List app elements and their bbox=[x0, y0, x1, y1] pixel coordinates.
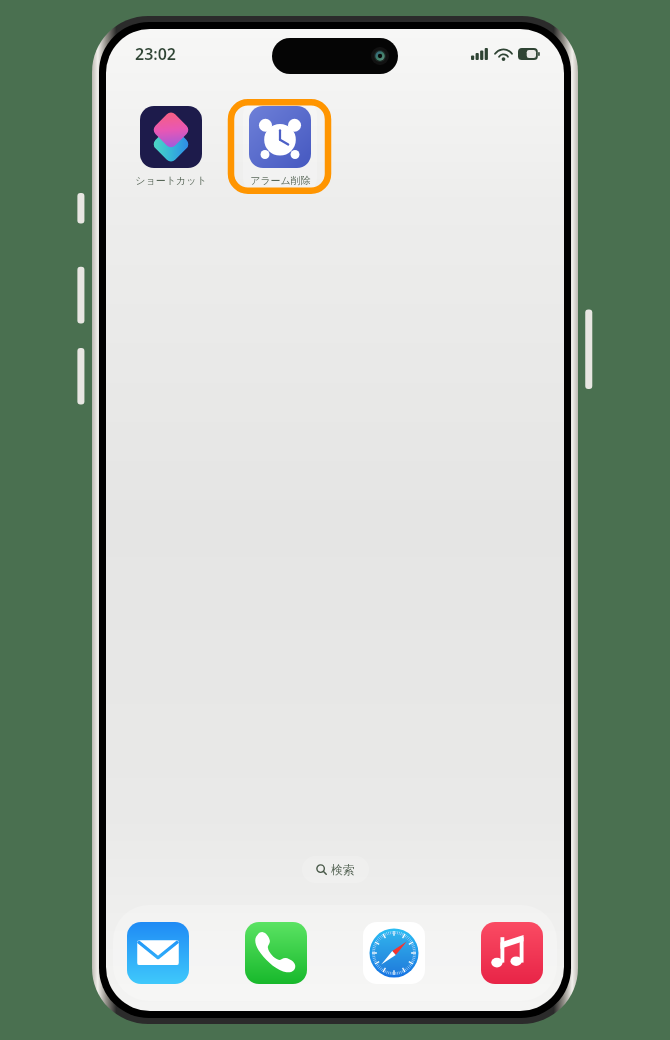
button[interactable]: 検索 bbox=[302, 856, 369, 883]
staticText: 23:02 bbox=[135, 43, 177, 65]
button[interactable]: Phone bbox=[245, 922, 307, 984]
button[interactable]: ショートカット bbox=[129, 99, 213, 194]
staticText: 検索 bbox=[331, 862, 355, 877]
button[interactable]: Music bbox=[481, 922, 543, 984]
button[interactable]: Safari bbox=[363, 922, 425, 984]
staticText: ショートカット bbox=[135, 174, 207, 187]
button[interactable]: アラーム削除 bbox=[243, 99, 317, 194]
staticText: アラーム削除 bbox=[250, 174, 311, 187]
button[interactable]: Mail bbox=[127, 922, 189, 984]
